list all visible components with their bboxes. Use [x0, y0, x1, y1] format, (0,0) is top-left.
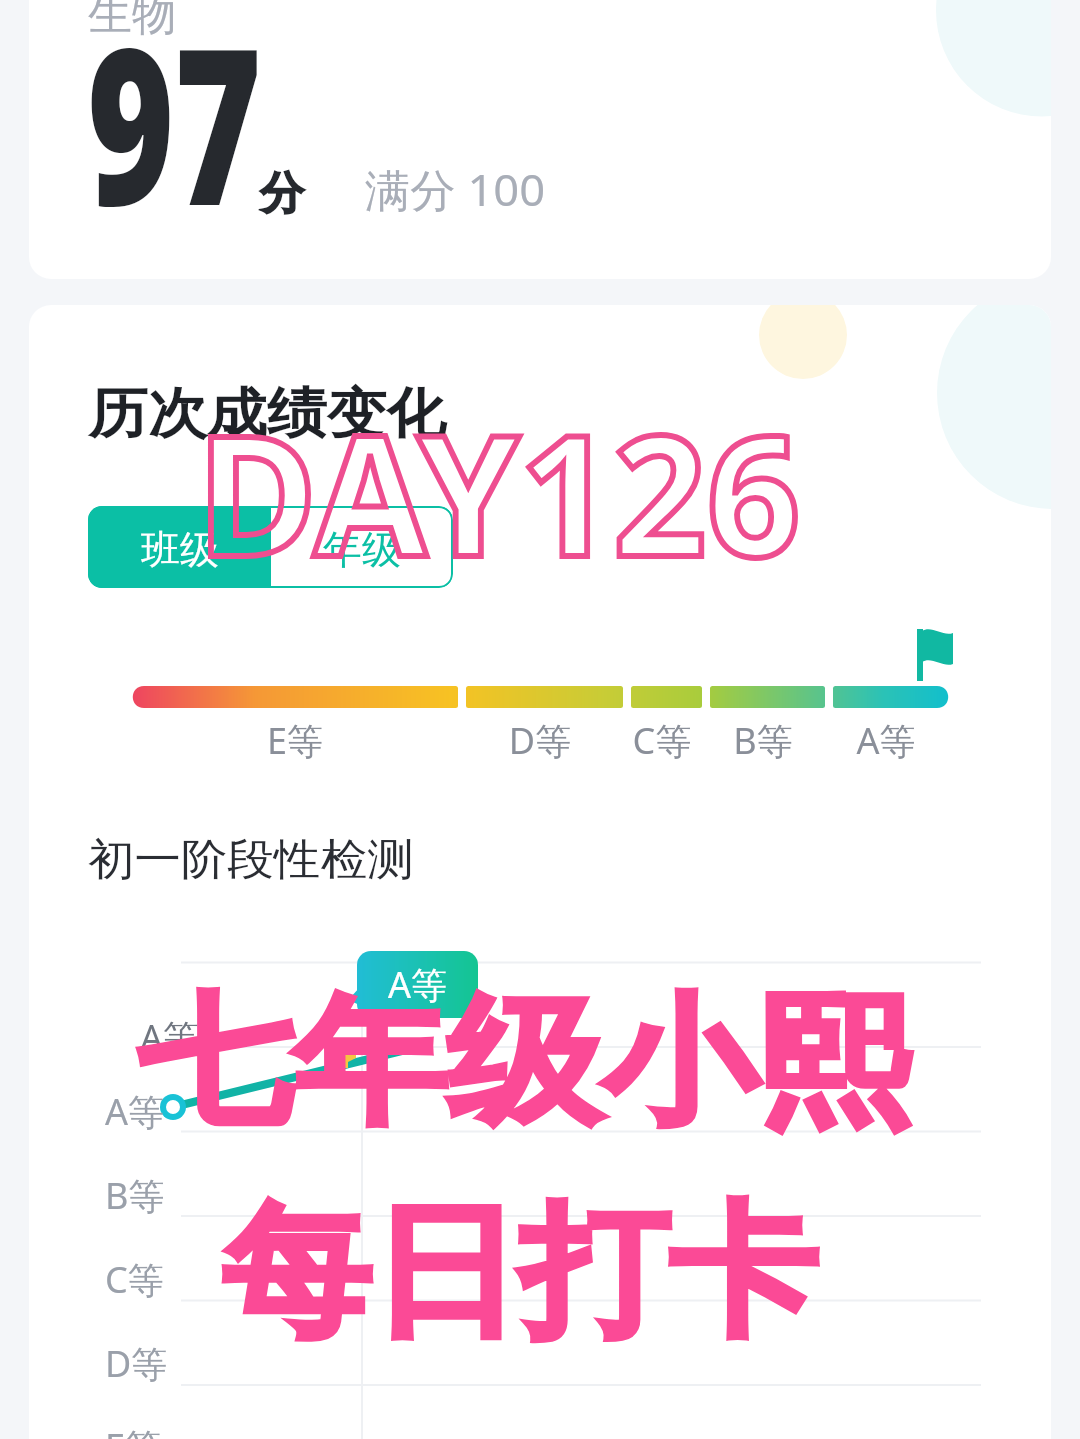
button[interactable]: 年级 — [271, 506, 453, 588]
staticText: 97 — [87, 0, 262, 268]
staticText: 七年级小熙 — [138, 976, 911, 1150]
button[interactable]: 班级 — [88, 506, 271, 588]
staticText: 班级 — [141, 525, 219, 574]
staticText: 生物 — [88, 0, 176, 42]
staticText: A等 — [826, 716, 946, 765]
staticText: C等 — [602, 716, 722, 765]
staticText: E等 — [105, 1422, 162, 1439]
staticText: B等 — [105, 1171, 165, 1220]
staticText: 每日打卡 — [222, 1183, 817, 1363]
staticText: A等+ — [140, 1013, 220, 1062]
staticText: 历次成绩变化 — [88, 380, 446, 448]
button[interactable] — [29, 0, 1051, 279]
staticText: A等 — [388, 960, 448, 1009]
button[interactable]: A等 — [357, 951, 478, 1018]
staticText: A等 — [105, 1087, 165, 1136]
staticText: D等 — [105, 1339, 168, 1388]
staticText: 初一阶段性检测 — [88, 833, 414, 887]
button[interactable]: Grade progress bar, current grade A — [133, 620, 953, 720]
staticText: 分 — [260, 166, 304, 221]
staticText: D等 — [480, 716, 600, 765]
staticText: E等 — [235, 716, 355, 765]
staticText: C等 — [105, 1255, 164, 1304]
staticText: 年级 — [323, 525, 401, 574]
staticText: B等 — [703, 716, 823, 765]
staticText: 满分 100 — [365, 159, 545, 219]
staticText: DAY126 — [197, 377, 801, 604]
